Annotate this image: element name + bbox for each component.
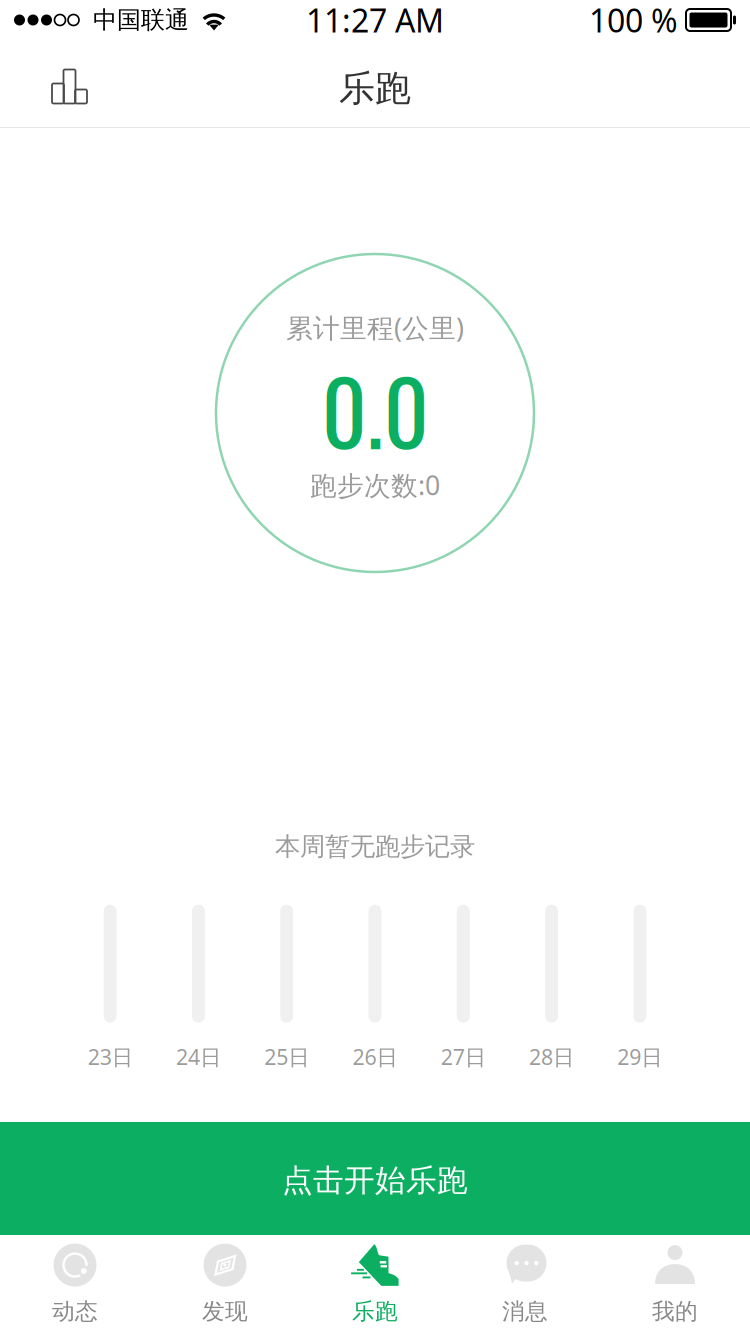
staticText: 乐跑 <box>352 1298 398 1325</box>
button[interactable]: 乐跑 <box>300 1235 450 1334</box>
staticText: 25日 <box>264 1043 309 1071</box>
staticText: 点击开始乐跑 <box>282 1162 468 1199</box>
staticText: 28日 <box>529 1043 574 1071</box>
staticText: 11:27 AM <box>306 0 444 41</box>
staticText: 24日 <box>176 1043 221 1071</box>
button[interactable]: 点击开始乐跑 <box>0 1122 750 1235</box>
staticText: 23日 <box>88 1043 133 1071</box>
button[interactable]: 消息 <box>450 1235 600 1334</box>
staticText: 发现 <box>202 1298 248 1325</box>
staticText: 100 % <box>589 0 678 41</box>
staticText: 乐跑 <box>339 66 411 111</box>
staticText: 26日 <box>352 1043 397 1071</box>
button[interactable]: 数据统计 <box>20 53 96 113</box>
staticText: 动态 <box>52 1298 98 1325</box>
staticText: 27日 <box>441 1043 486 1071</box>
staticText: 29日 <box>617 1043 662 1071</box>
button[interactable]: 动态 <box>0 1235 150 1334</box>
button[interactable]: 发现 <box>150 1235 300 1334</box>
staticText: 累计里程(公里) <box>286 310 464 345</box>
button[interactable]: 我的 <box>600 1235 750 1334</box>
staticText: 0.0 <box>321 344 428 475</box>
staticText: 跑步次数:0 <box>310 467 440 503</box>
staticText: 我的 <box>652 1298 698 1325</box>
staticText: 本周暂无跑步记录 <box>275 831 475 862</box>
staticText: 消息 <box>502 1298 548 1325</box>
staticText: 中国联通 <box>93 5 189 35</box>
